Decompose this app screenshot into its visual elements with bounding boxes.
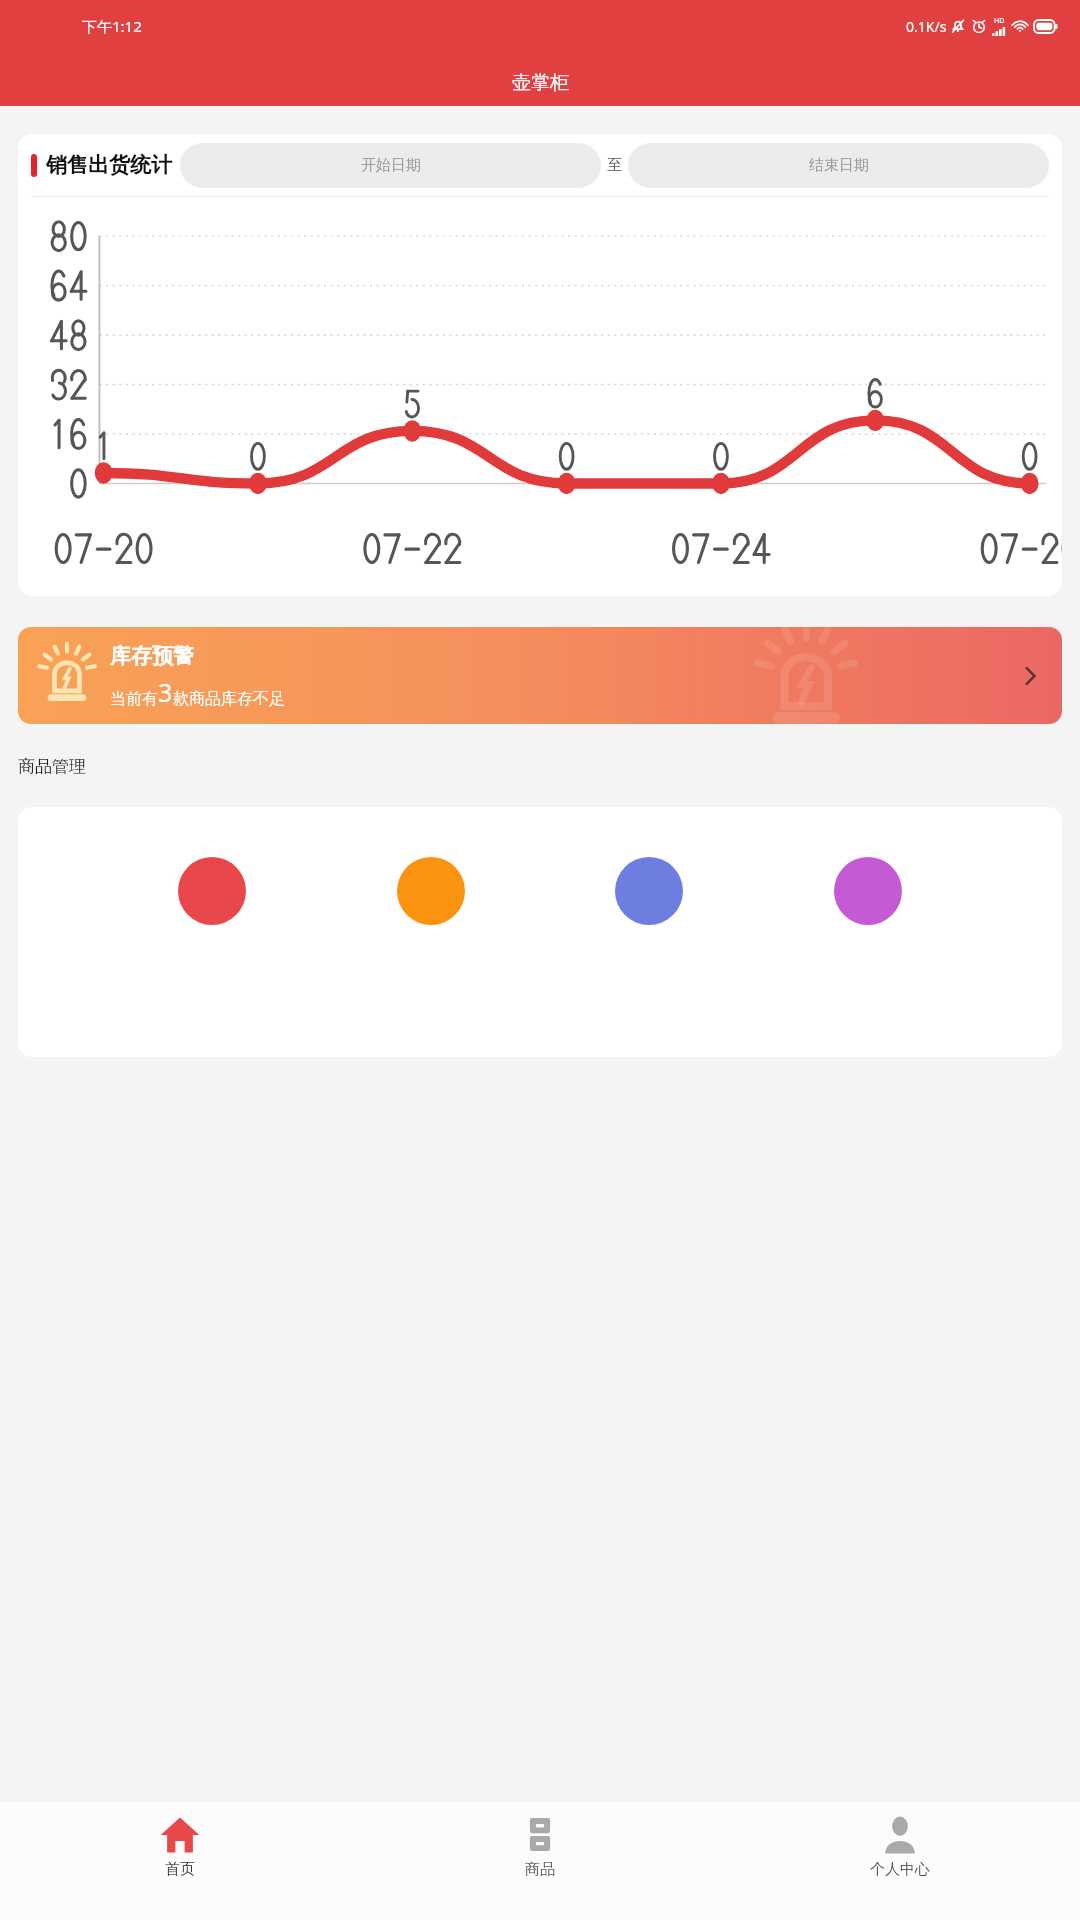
- staticText: 壶掌柜: [512, 71, 569, 95]
- button[interactable]: [397, 857, 465, 925]
- staticText: 款商品库存不足: [173, 689, 285, 709]
- staticText: 库存预警: [110, 643, 194, 669]
- staticText: 结束日期: [809, 156, 869, 175]
- button[interactable]: 个人中心: [720, 1802, 1080, 1920]
- staticText: 销售出货统计: [46, 152, 172, 178]
- staticText: HD: [994, 16, 1005, 26]
- button[interactable]: 库存预警: [18, 627, 1062, 724]
- button[interactable]: 首页: [0, 1802, 360, 1920]
- staticText: 商品: [525, 1860, 555, 1879]
- staticText: 个人中心: [870, 1860, 930, 1879]
- staticText: 下午1:12: [82, 16, 142, 36]
- button[interactable]: 商品: [360, 1802, 720, 1920]
- other: 查看库存预警: [1016, 662, 1044, 690]
- staticText: 商品管理: [18, 756, 86, 777]
- staticText: 开始日期: [361, 156, 421, 175]
- button[interactable]: [178, 857, 246, 925]
- staticText: 至: [607, 156, 622, 175]
- staticText: 首页: [165, 1860, 195, 1879]
- staticText: 3: [158, 675, 173, 709]
- staticText: 0.1K/s: [906, 17, 947, 36]
- staticText: 当前有: [110, 689, 158, 709]
- button[interactable]: 结束日期: [628, 143, 1049, 188]
- button[interactable]: [834, 857, 902, 925]
- button[interactable]: 开始日期: [180, 143, 601, 188]
- button[interactable]: [615, 857, 683, 925]
